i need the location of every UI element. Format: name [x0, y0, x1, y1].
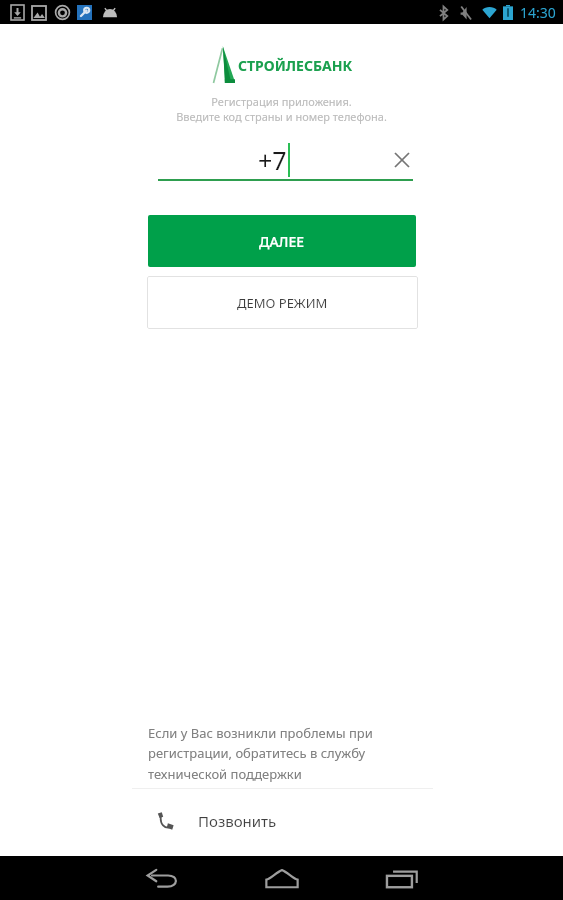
button[interactable]: Back	[132, 856, 192, 900]
staticText: Позвонить	[198, 811, 277, 831]
button[interactable]: +7	[158, 139, 390, 181]
button[interactable]: Recent apps	[372, 856, 432, 900]
button[interactable]: ДАЛЕЕ	[148, 215, 416, 267]
staticText: +7	[258, 143, 287, 177]
staticText: Введите код страны и номер телефона.	[0, 109, 563, 124]
button[interactable]: Позвонить	[0, 789, 563, 853]
staticText: Если у Вас возникли проблемы при регистр…	[148, 724, 387, 783]
staticText: ДАЛЕЕ	[259, 232, 305, 251]
staticText: Регистрация приложения.	[0, 94, 563, 109]
staticText: ДЕМО РЕЖИМ	[237, 294, 328, 312]
staticText: СТРОЙЛЕСБАНК	[238, 56, 353, 75]
button[interactable]: Clear text	[390, 139, 413, 181]
staticText: 14:30	[520, 3, 556, 22]
button[interactable]: Home	[252, 856, 312, 900]
button[interactable]: ДЕМО РЕЖИМ	[147, 276, 418, 329]
